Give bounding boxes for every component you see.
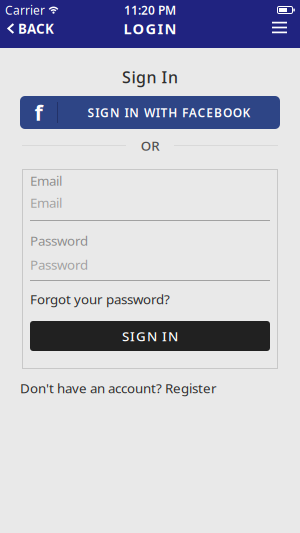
staticText: Password [30,232,88,249]
staticText: Carrier [5,2,45,18]
staticText: BACK [18,20,54,37]
button[interactable]: Forgot your password? [30,292,270,306]
staticText: Sign In [122,66,178,88]
staticText: LOGIN [123,19,176,38]
staticText: Email [30,194,62,211]
staticText: Don't have an account? Register [20,379,217,397]
button[interactable]: Don't have an account? Register [20,381,217,395]
staticText: f [34,98,42,127]
button[interactable]: SIGN IN [30,321,270,351]
staticText: SIGN IN WITH FACEBOOK [87,104,250,120]
staticText: 11:20 PM [124,2,176,18]
staticText: Forgot your password? [30,290,170,308]
staticText: SIGN IN [122,327,178,345]
button[interactable]: BACK [0,20,54,37]
button[interactable] [272,23,300,34]
button[interactable]: f [20,96,280,129]
staticText: Password [30,256,88,273]
staticText: OR [141,137,159,154]
staticText: Email [30,172,62,189]
